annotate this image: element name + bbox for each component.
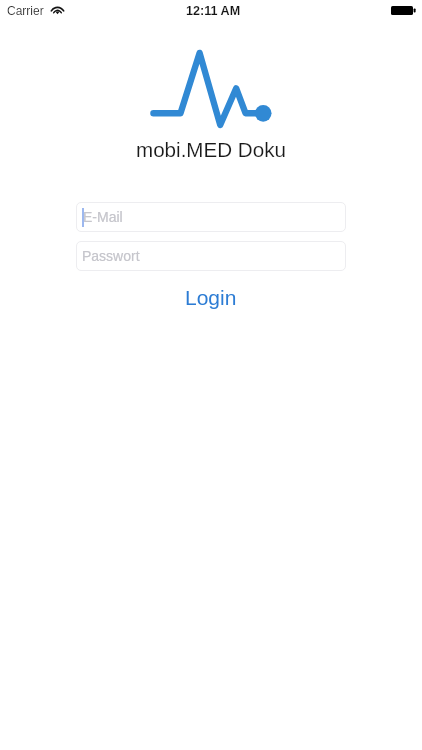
- staticText: E-Mail: [83, 209, 123, 225]
- button[interactable]: Login: [167, 283, 255, 312]
- other: mobi.MED Doku logo: [144, 44, 276, 134]
- button[interactable]: E-Mail: [76, 202, 346, 232]
- other: Wi-Fi signal: [51, 5, 64, 14]
- staticText: 12:11 AM: [186, 4, 241, 18]
- staticText: Carrier: [7, 4, 44, 17]
- staticText: Login: [185, 286, 237, 309]
- staticText: mobi.MED Doku: [136, 138, 286, 161]
- other: Battery full: [391, 6, 416, 16]
- staticText: Passwort: [82, 248, 140, 264]
- button[interactable]: Passwort: [76, 241, 346, 271]
